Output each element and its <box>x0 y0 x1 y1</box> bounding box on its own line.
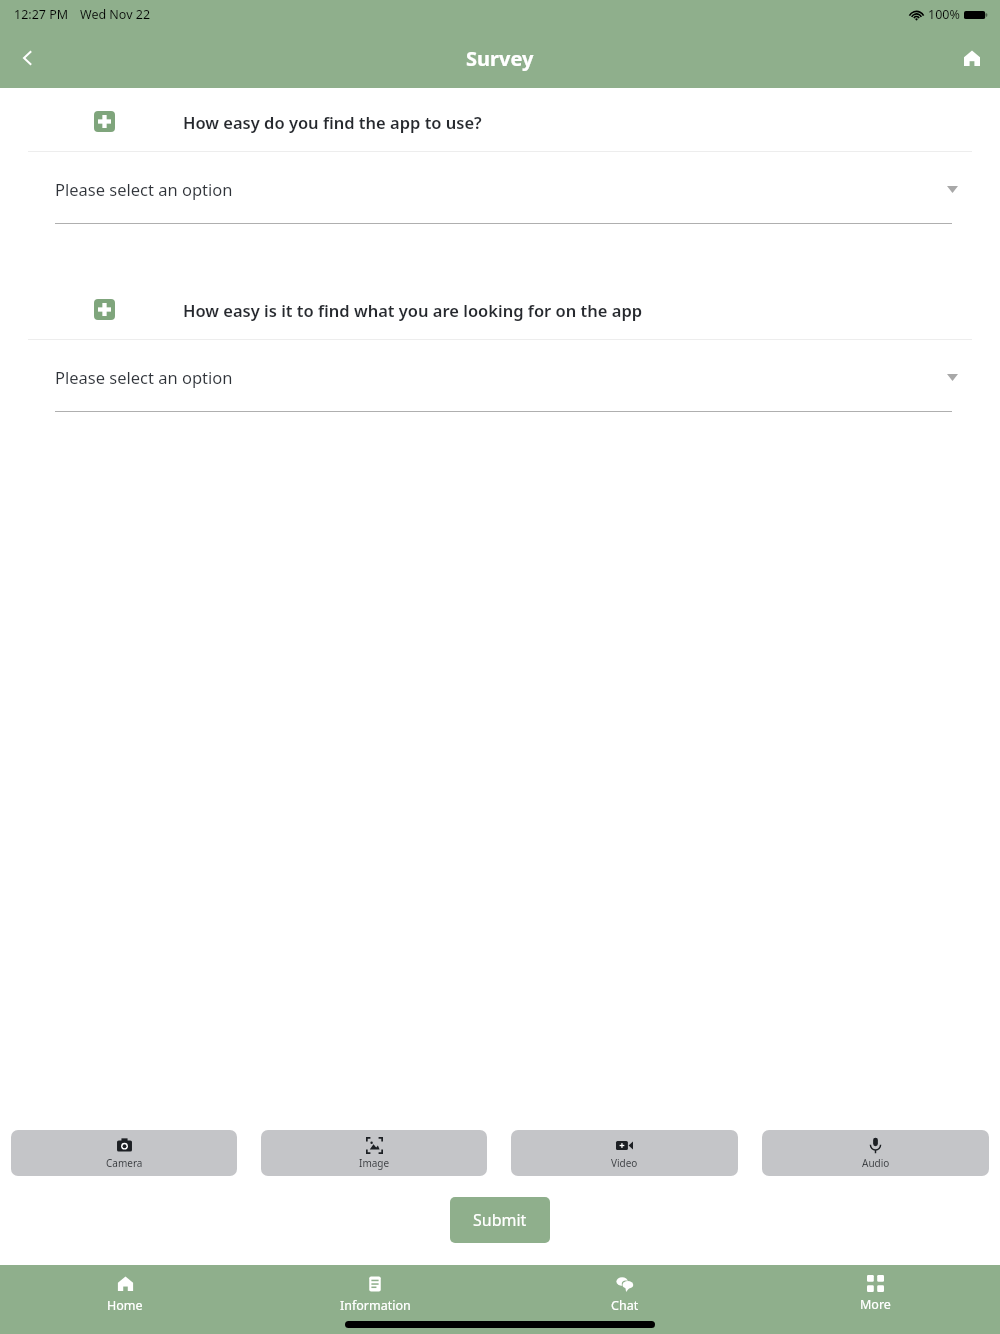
staticText: Survey <box>466 45 534 72</box>
staticText: 100% <box>928 6 960 23</box>
button[interactable]: Home <box>944 30 1000 86</box>
button[interactable]: Submit <box>450 1197 550 1243</box>
staticText: Submit <box>473 1209 527 1231</box>
button[interactable]: Information <box>250 1265 500 1323</box>
staticText: Video <box>611 1156 638 1170</box>
staticText: Information <box>340 1297 411 1314</box>
staticText: 12:27 PM <box>14 6 69 23</box>
button[interactable]: More <box>750 1265 1000 1323</box>
staticText: Please select an option <box>55 178 233 200</box>
button[interactable]: Image <box>261 1130 487 1176</box>
button[interactable]: Chat <box>500 1265 750 1323</box>
staticText: Audio <box>862 1156 890 1170</box>
button[interactable]: How easy do you find the app to use? <box>20 92 980 265</box>
staticText: How easy is it to find what you are look… <box>183 299 643 321</box>
button[interactable]: Back <box>0 30 56 86</box>
staticText: Image <box>359 1156 390 1170</box>
button[interactable]: How easy is it to find what you are look… <box>20 280 980 453</box>
button[interactable]: Video <box>511 1130 738 1176</box>
button[interactable]: Home <box>0 1265 250 1323</box>
staticText: More <box>860 1296 891 1313</box>
staticText: How easy do you find the app to use? <box>183 111 482 133</box>
button[interactable]: Audio <box>762 1130 989 1176</box>
staticText: Wed Nov 22 <box>80 6 151 23</box>
button[interactable]: Camera <box>11 1130 237 1176</box>
staticText: Please select an option <box>55 366 233 388</box>
staticText: Camera <box>106 1156 143 1170</box>
staticText: Home <box>107 1297 143 1314</box>
staticText: Chat <box>611 1297 639 1314</box>
